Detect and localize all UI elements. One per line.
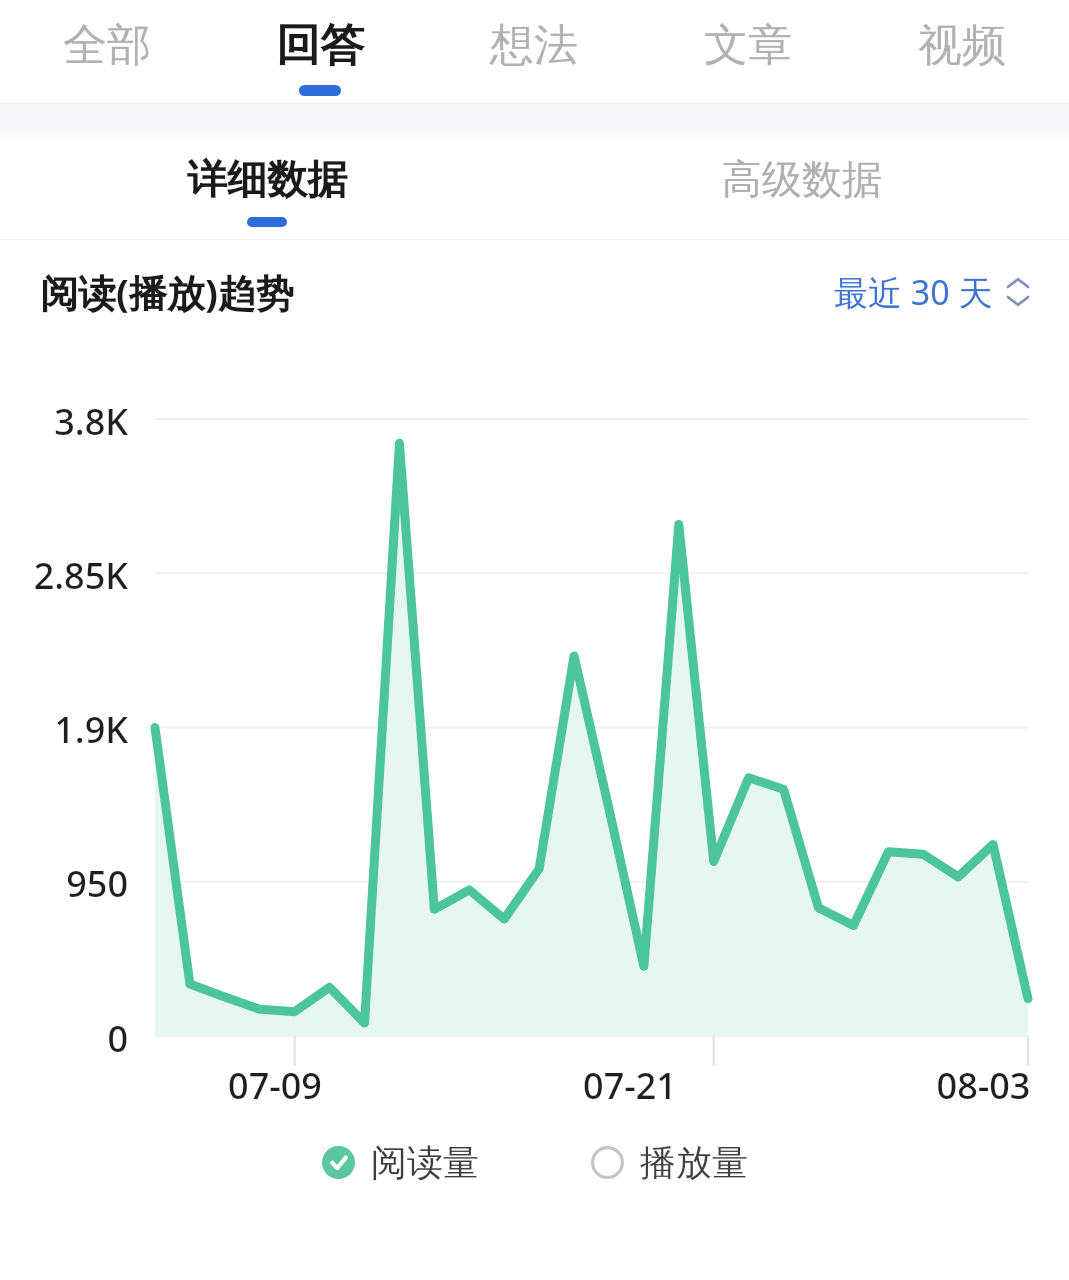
staticText: 3.8K: [54, 397, 128, 446]
staticText: 1.9K: [54, 705, 128, 754]
staticText: 想法: [490, 18, 578, 73]
staticText: 视频: [918, 18, 1006, 73]
staticText: 详细数据: [187, 154, 347, 204]
button[interactable]: 播放量: [585, 1134, 754, 1191]
staticText: 回答: [276, 18, 364, 73]
staticText: 文章: [704, 18, 792, 73]
staticText: 07-09: [185, 1061, 365, 1110]
staticText: 播放量: [640, 1140, 748, 1185]
staticText: 950: [66, 859, 128, 908]
staticText: 阅读(播放)趋势: [40, 266, 294, 318]
button[interactable]: 最近 30 天: [830, 263, 1039, 321]
button[interactable]: 回答: [213, 0, 427, 103]
staticText: 阅读量: [371, 1140, 479, 1185]
button[interactable]: 文章: [641, 0, 855, 103]
button[interactable]: 想法: [427, 0, 641, 103]
staticText: 2.85K: [33, 551, 128, 600]
button[interactable]: 高级数据: [534, 142, 1069, 239]
other: 选择时间范围: [1001, 275, 1035, 309]
staticText: 0: [107, 1014, 128, 1063]
staticText: 全部: [63, 18, 151, 73]
staticText: 高级数据: [722, 154, 882, 204]
button[interactable]: 阅读量: [316, 1134, 485, 1191]
button[interactable]: 详细数据: [0, 142, 534, 239]
button[interactable]: 全部: [0, 0, 213, 103]
staticText: 08-03: [898, 1061, 1069, 1110]
button[interactable]: 视频: [855, 0, 1069, 103]
staticText: 07-21: [540, 1061, 720, 1110]
staticText: 最近 30 天: [834, 269, 993, 315]
